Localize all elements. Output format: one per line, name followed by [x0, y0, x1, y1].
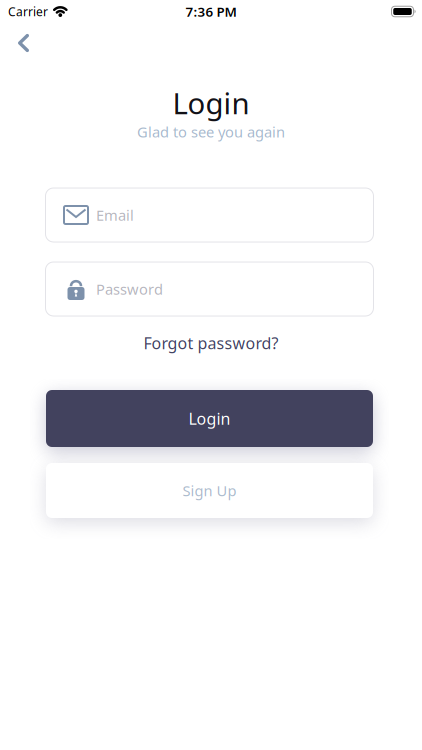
button[interactable]: Login — [46, 390, 373, 447]
staticText: Forgot password? — [143, 332, 278, 354]
button[interactable]: Email — [45, 188, 373, 242]
staticText: Password — [96, 279, 163, 299]
staticText: 7:36 PM — [185, 3, 236, 20]
staticText: Sign Up — [182, 481, 236, 500]
staticText: Email — [96, 205, 134, 225]
button[interactable]: Sign Up — [46, 463, 373, 518]
staticText: Glad to see you again — [137, 122, 285, 141]
button[interactable]: Forgot password? — [143, 332, 278, 354]
staticText: Login — [188, 408, 230, 429]
staticText: Login — [172, 83, 249, 122]
staticText: Carrier — [8, 3, 48, 19]
button[interactable]: Password — [45, 262, 373, 316]
button[interactable]: Back — [0, 26, 29, 60]
